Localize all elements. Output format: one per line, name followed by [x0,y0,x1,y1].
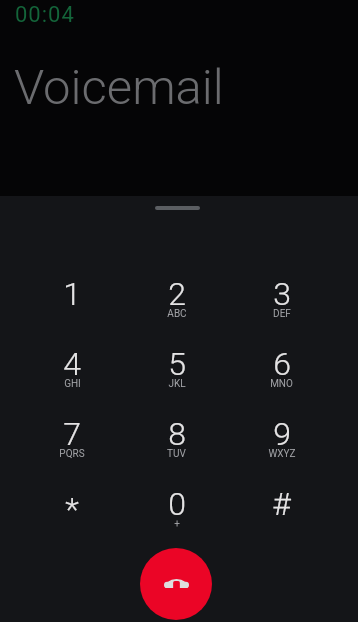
button[interactable]: End call [140,548,212,620]
staticText: 0 [168,485,186,523]
staticText: 9 [273,415,291,453]
staticText: * [65,490,79,528]
staticText: TUV [167,448,186,460]
staticText: DEF [273,308,291,320]
staticText: 2 [168,275,186,313]
staticText: 6 [273,345,291,383]
button[interactable]: Four [20,345,124,415]
staticText: JKL [168,378,186,390]
button[interactable]: Seven [20,415,124,485]
button[interactable]: Zero [124,485,229,555]
staticText: 1 [63,275,81,313]
staticText: 7 [63,415,81,453]
staticText: GHI [64,378,81,390]
button[interactable]: Star [20,485,124,555]
button[interactable]: One [20,275,124,345]
staticText: # [272,485,291,523]
staticText: MNO [270,378,293,390]
staticText: PQRS [59,448,85,460]
staticText: WXYZ [268,448,296,460]
button[interactable]: Eight [124,415,229,485]
staticText: 4 [63,345,81,383]
staticText: 3 [273,275,291,313]
staticText: Voicemail [14,59,224,116]
button[interactable]: Nine [229,415,334,485]
button[interactable]: Six [229,345,334,415]
button[interactable]: Collapse dial pad [155,206,200,210]
button[interactable]: Three [229,275,334,345]
staticText: + [174,518,180,530]
button[interactable]: Five [124,345,229,415]
button[interactable]: Two [124,275,229,345]
staticText: 00:04 [15,2,75,28]
staticText: 5 [168,345,186,383]
staticText: 8 [168,415,186,453]
staticText: ABC [167,308,187,320]
button[interactable]: Pound [229,485,334,555]
